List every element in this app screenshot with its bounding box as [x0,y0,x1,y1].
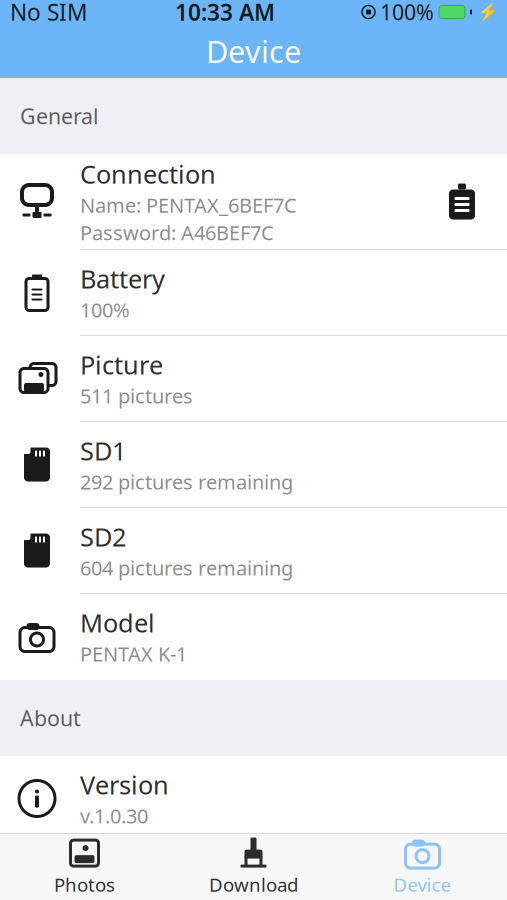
staticText: Connection [80,157,216,191]
staticText: Device [393,872,451,897]
staticText: Name: PENTAX_6BEF7C [80,192,297,218]
staticText: 10:33 AM [175,0,275,27]
staticText: 100% [380,0,434,26]
button[interactable]: Connection [0,154,507,250]
staticText: Download [209,872,298,897]
staticText: 100% [80,296,130,323]
button[interactable]: SD1 [0,422,507,508]
staticText: 511 pictures [80,382,193,409]
staticText: Version [80,768,169,801]
staticText: SD1 [80,434,126,467]
staticText: About [20,704,81,732]
staticText: Photos [54,872,115,897]
staticText: v.1.0.30 [80,802,148,829]
staticText: Device [206,31,301,71]
staticText: ⚡ [477,2,499,22]
staticText: 604 pictures remaining [80,554,293,581]
staticText: Password: A46BEF7C [80,219,274,246]
button[interactable]: Device [338,834,507,900]
staticText: Picture [80,348,163,381]
button[interactable]: Version [0,756,507,842]
staticText: Battery [80,262,165,295]
button[interactable]: Battery [0,250,507,336]
button[interactable]: Photos [0,834,169,900]
staticText: Model [80,606,155,639]
staticText: SD2 [80,520,126,553]
staticText: PENTAX K-1 [80,640,187,667]
button[interactable]: Model [0,594,507,680]
staticText: General [20,102,99,130]
button[interactable]: SD2 [0,508,507,594]
staticText: 292 pictures remaining [80,468,293,495]
button[interactable]: Picture [0,336,507,422]
button[interactable]: Download [169,834,338,900]
staticText: No SIM [10,0,88,27]
